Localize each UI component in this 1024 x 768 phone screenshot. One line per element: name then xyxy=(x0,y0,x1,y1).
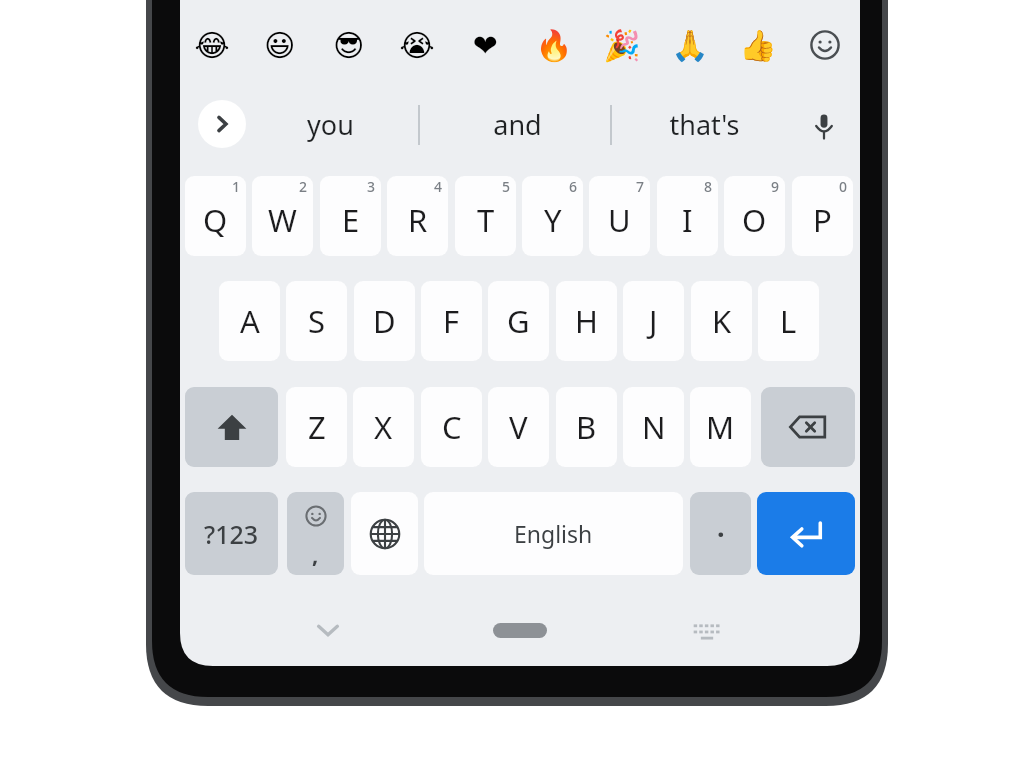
button[interactable]: S xyxy=(286,281,347,361)
staticText: R xyxy=(408,199,428,241)
staticText: W xyxy=(268,199,297,241)
button[interactable]: Expand toolbar xyxy=(198,100,246,148)
button[interactable]: ?123 xyxy=(185,492,278,575)
staticText: T xyxy=(477,199,495,241)
button[interactable]: K xyxy=(691,281,752,361)
staticText: 😃 xyxy=(264,28,296,63)
button[interactable]: E xyxy=(320,176,381,256)
staticText: E xyxy=(342,199,360,241)
staticText: 😭 xyxy=(399,28,435,63)
staticText: and xyxy=(493,106,542,143)
staticText: P xyxy=(813,199,832,241)
staticText: 8 xyxy=(704,177,713,196)
staticText: , xyxy=(312,539,319,569)
staticText: J xyxy=(649,300,658,342)
button[interactable]: that's xyxy=(624,96,784,152)
button[interactable]: Z xyxy=(286,387,347,467)
staticText: 7 xyxy=(636,177,645,196)
button[interactable]: M xyxy=(690,387,751,467)
staticText: 😎 xyxy=(333,28,365,63)
button[interactable]: Q xyxy=(185,176,246,256)
staticText: ?123 xyxy=(204,517,259,551)
staticText: M xyxy=(706,406,735,448)
staticText: 5 xyxy=(502,177,511,196)
button[interactable]: D xyxy=(354,281,415,361)
button[interactable]: L xyxy=(758,281,819,361)
button[interactable]: you xyxy=(250,96,410,152)
button[interactable]: Shift xyxy=(185,387,278,467)
button[interactable]: I xyxy=(657,176,718,256)
staticText: 🙏 xyxy=(671,28,709,63)
button[interactable]: V xyxy=(488,387,549,467)
staticText: O xyxy=(742,199,767,241)
staticText: ❤️ xyxy=(472,28,498,63)
button[interactable]: U xyxy=(589,176,650,256)
button[interactable]: 😃 xyxy=(256,21,304,69)
staticText: F xyxy=(443,300,460,342)
staticText: H xyxy=(575,300,598,342)
button[interactable]: Voice input xyxy=(798,100,850,152)
button[interactable]: More emoji xyxy=(801,21,849,69)
button[interactable]: R xyxy=(387,176,448,256)
button[interactable]: English xyxy=(424,492,683,575)
button[interactable]: and xyxy=(437,96,597,152)
button[interactable]: A xyxy=(219,281,280,361)
button[interactable]: ❤️ xyxy=(461,21,509,69)
staticText: S xyxy=(308,300,326,342)
button[interactable]: 🙏 xyxy=(666,21,714,69)
staticText: Y xyxy=(544,199,562,241)
button[interactable]: P xyxy=(792,176,853,256)
staticText: X xyxy=(374,406,393,448)
staticText: D xyxy=(373,300,396,342)
staticText: English xyxy=(514,518,593,549)
button[interactable]: T xyxy=(455,176,516,256)
staticText: 6 xyxy=(569,177,578,196)
staticText: L xyxy=(780,300,797,342)
staticText: U xyxy=(608,199,631,241)
button[interactable]: O xyxy=(724,176,785,256)
button[interactable]: N xyxy=(623,387,684,467)
button[interactable]: W xyxy=(252,176,313,256)
button[interactable]: Hide keyboard xyxy=(300,602,356,658)
button[interactable]: 👍 xyxy=(734,21,782,69)
button[interactable]: F xyxy=(421,281,482,361)
button[interactable]: G xyxy=(488,281,549,361)
staticText: 3 xyxy=(367,177,376,196)
button[interactable]: 🔥 xyxy=(530,21,578,69)
staticText: 👍 xyxy=(739,28,777,63)
staticText: . xyxy=(717,508,725,545)
staticText: C xyxy=(442,406,462,448)
button[interactable]: . xyxy=(690,492,751,575)
button[interactable]: Backspace xyxy=(761,387,855,467)
staticText: 1 xyxy=(232,177,241,196)
button[interactable]: Home xyxy=(466,602,574,658)
button[interactable]: 😭 xyxy=(393,21,441,69)
staticText: 4 xyxy=(434,177,443,196)
staticText: 🎉 xyxy=(603,28,641,63)
staticText: 0 xyxy=(839,177,848,196)
staticText: Q xyxy=(203,199,228,241)
staticText: V xyxy=(509,406,528,448)
staticText: G xyxy=(507,300,530,342)
staticText: N xyxy=(642,406,666,448)
staticText: A xyxy=(240,300,260,342)
button[interactable]: Change language xyxy=(351,492,418,575)
button[interactable]: 😂 xyxy=(188,21,236,69)
staticText: that's xyxy=(669,106,740,143)
button[interactable]: X xyxy=(353,387,414,467)
button[interactable]: C xyxy=(421,387,482,467)
button[interactable]: Emoji and comma xyxy=(287,492,344,575)
staticText: B xyxy=(576,406,597,448)
staticText: 🔥 xyxy=(535,28,573,63)
staticText: Z xyxy=(308,406,326,448)
button[interactable]: 🎉 xyxy=(598,21,646,69)
button[interactable]: H xyxy=(556,281,617,361)
button[interactable]: Switch input method xyxy=(679,602,735,658)
button[interactable]: Enter xyxy=(757,492,855,575)
button[interactable]: 😎 xyxy=(325,21,373,69)
staticText: 😂 xyxy=(194,28,230,63)
staticText: 2 xyxy=(299,177,308,196)
button[interactable]: B xyxy=(556,387,617,467)
button[interactable]: Y xyxy=(522,176,583,256)
button[interactable]: J xyxy=(623,281,684,361)
